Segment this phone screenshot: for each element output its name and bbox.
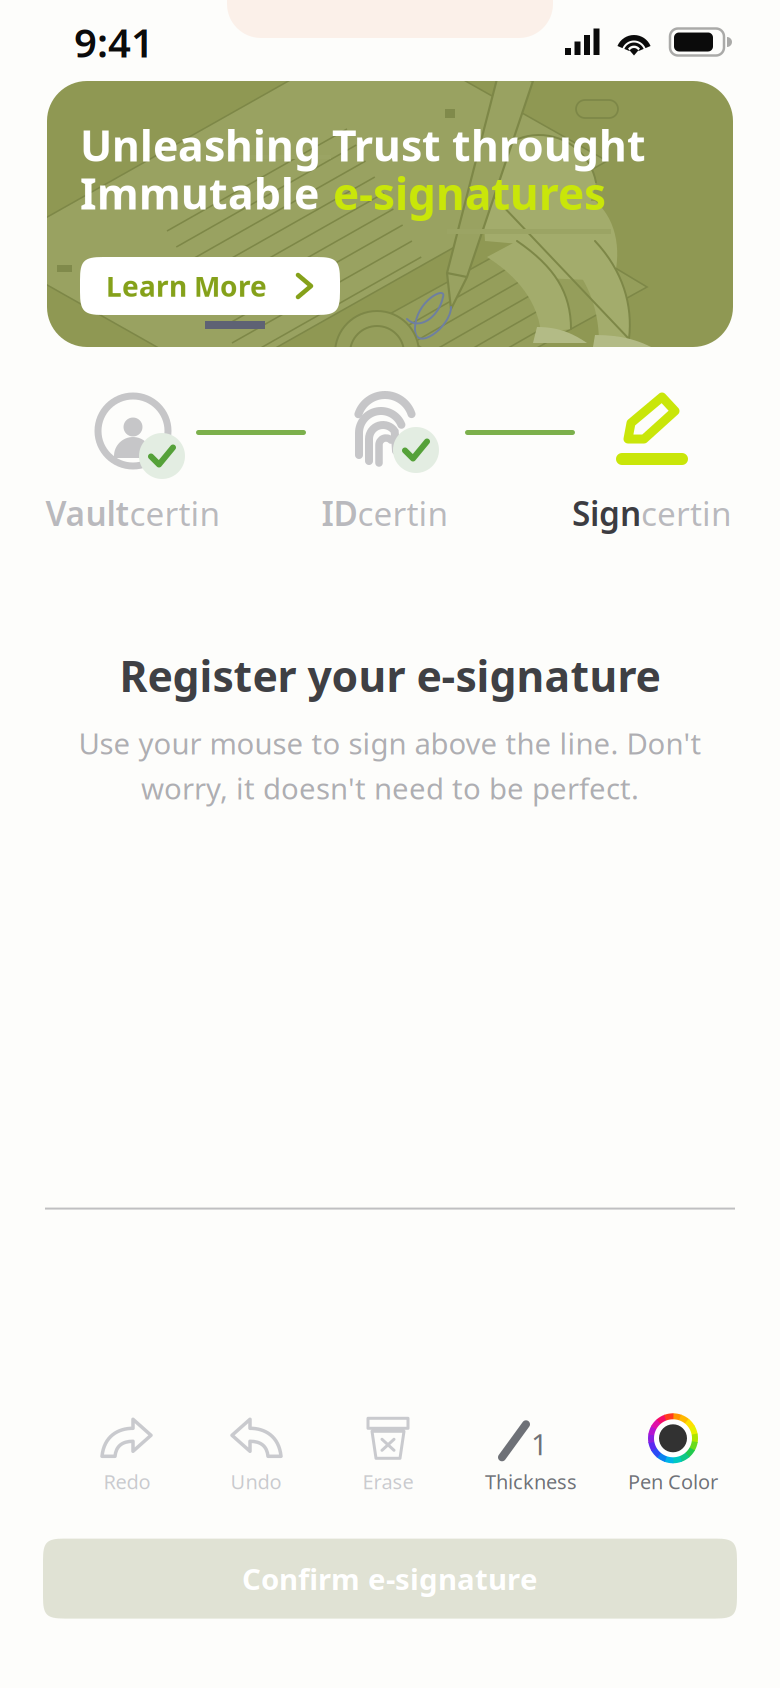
button[interactable]: Redo xyxy=(61,1404,193,1508)
button[interactable]: Learn More xyxy=(80,257,340,315)
staticText: Pen Color xyxy=(628,1468,718,1495)
staticText: certin xyxy=(129,491,220,535)
staticText: Vault xyxy=(45,491,129,535)
staticText: 1 xyxy=(531,1424,548,1463)
staticText: certin xyxy=(357,491,448,535)
staticText: Learn More xyxy=(106,267,267,305)
button[interactable]: Pen Color xyxy=(607,1404,739,1508)
staticText: e-signatures xyxy=(333,164,606,222)
staticText: ID xyxy=(321,491,357,535)
staticText: Use your mouse to sign above the line. D… xyxy=(78,724,701,763)
staticText: 9:41 xyxy=(74,15,154,68)
staticText: Immutable xyxy=(80,165,319,221)
staticText: worry, it doesn't need to be perfect. xyxy=(141,769,639,808)
staticText: Unleashing Trust throught xyxy=(80,117,646,173)
staticText: Undo xyxy=(230,1468,281,1495)
button[interactable]: Confirm e-signature xyxy=(43,1539,737,1619)
staticText: certin xyxy=(641,491,732,535)
button[interactable]: Erase xyxy=(322,1404,454,1508)
button[interactable]: 1 xyxy=(465,1404,597,1508)
staticText: Thickness xyxy=(485,1468,577,1495)
staticText: Sign xyxy=(572,491,641,535)
staticText: Redo xyxy=(103,1468,150,1495)
staticText: Erase xyxy=(362,1468,413,1495)
button[interactable]: Undo xyxy=(190,1404,322,1508)
staticText: Register your e-signature xyxy=(119,647,660,704)
staticText: Confirm e-signature xyxy=(242,1559,538,1598)
